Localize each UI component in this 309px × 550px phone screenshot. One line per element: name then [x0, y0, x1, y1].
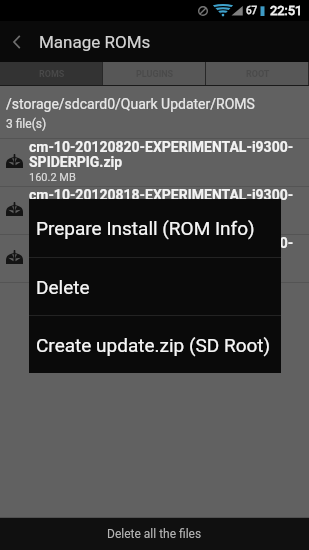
- staticText: 160.2 MB: [29, 171, 76, 184]
- staticText: /storage/sdcard0/Quark Updater/ROMS: [6, 96, 255, 112]
- staticText: SPIDERPIG.zip: [29, 154, 123, 170]
- button[interactable]: PLUGINS: [103, 62, 206, 86]
- staticText: Delete: [36, 276, 90, 298]
- staticText: cm-10-20120820-EXPERIMENTAL-i9300-: [29, 139, 294, 155]
- staticText: 67: [246, 5, 258, 17]
- button[interactable]: ROMS: [0, 62, 103, 86]
- button[interactable]: cm-10-20120820-EXPERIMENTAL-i9300-: [0, 139, 309, 187]
- staticText: cm-10-20120816-EXPERIMENTAL-i9300-: [29, 235, 294, 251]
- staticText: Prepare Install (ROM Info): [36, 217, 255, 239]
- button[interactable]: Create update.zip (SD Root): [29, 316, 281, 373]
- button[interactable]: cm-10-20120816-EXPERIMENTAL-i9300-: [0, 235, 309, 283]
- staticText: ROOT: [246, 69, 270, 80]
- staticText: SPIDERPIG.zip: [29, 250, 123, 266]
- staticText: ROMS: [39, 69, 65, 80]
- staticText: 160.1 MB: [29, 219, 76, 232]
- staticText: Delete all the files: [107, 527, 202, 541]
- staticText: Manage ROMs: [39, 32, 151, 52]
- button[interactable]: Delete all the files: [0, 518, 309, 550]
- button[interactable]: Delete: [29, 258, 281, 315]
- staticText: 3 file(s): [6, 117, 47, 131]
- button[interactable]: Prepare Install (ROM Info): [29, 199, 281, 257]
- staticText: cm-10-20120818-EXPERIMENTAL-i9300-: [29, 187, 294, 203]
- button[interactable]: Back: [0, 21, 33, 62]
- button[interactable]: ROOT: [206, 62, 309, 86]
- button[interactable]: cm-10-20120818-EXPERIMENTAL-i9300-: [0, 187, 309, 235]
- staticText: 22:51: [270, 3, 303, 18]
- staticText: Create update.zip (SD Root): [36, 334, 271, 356]
- staticText: PLUGINS: [136, 69, 174, 80]
